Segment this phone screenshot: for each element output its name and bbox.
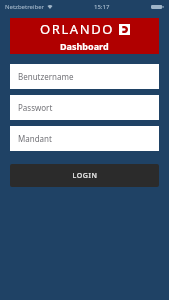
staticText: ORLANDO: [40, 20, 115, 38]
button[interactable]: LOGIN: [10, 164, 159, 187]
staticText: 15:17: [94, 3, 110, 11]
staticText: Passwort: [18, 102, 53, 113]
staticText: Mandant: [18, 133, 52, 144]
button[interactable]: Passwort: [10, 95, 159, 120]
button[interactable]: Benutzername: [10, 64, 159, 89]
staticText: Dashboard: [60, 40, 109, 52]
staticText: LOGIN: [72, 171, 98, 181]
staticText: Netzbetreiber: [5, 3, 45, 11]
button[interactable]: Mandant: [10, 126, 159, 151]
staticText: Benutzername: [18, 71, 74, 82]
